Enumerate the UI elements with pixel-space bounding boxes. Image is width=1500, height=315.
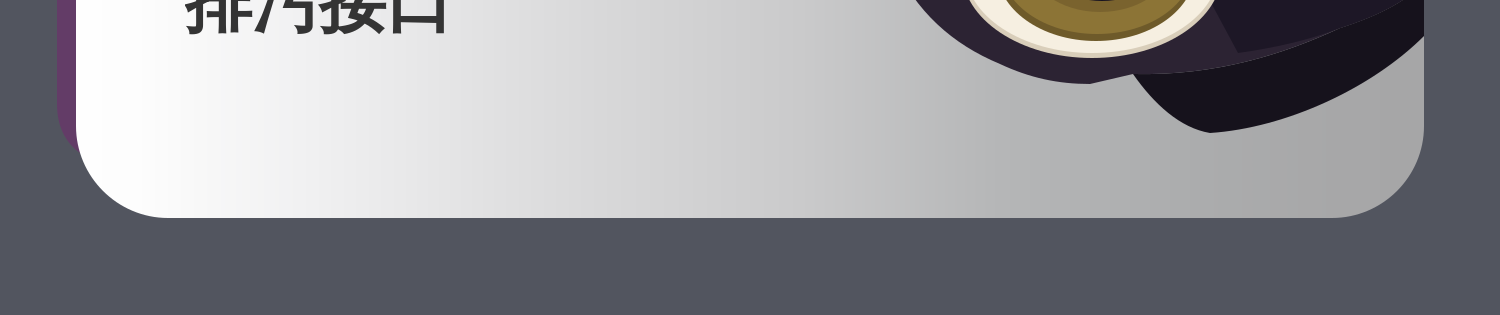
staticText: 排污接口 <box>185 0 453 44</box>
